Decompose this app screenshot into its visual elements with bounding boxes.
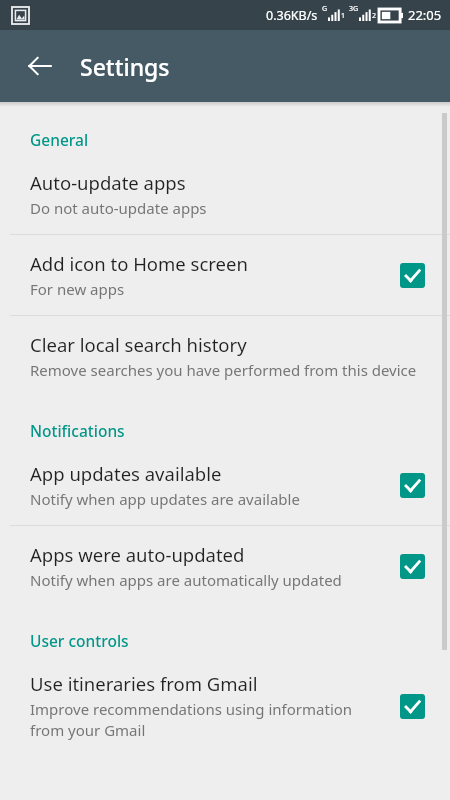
button[interactable]: Use itineraries from Gmail: [0, 655, 450, 757]
staticText: Use itineraries from Gmail: [30, 671, 258, 696]
button[interactable]: Clear local search history: [0, 316, 450, 396]
button[interactable]: Apps were auto-updated: [0, 526, 450, 606]
staticText: Notify when app updates are available: [30, 489, 300, 509]
staticText: Apps were auto-updated: [30, 542, 245, 567]
staticText: Do not auto-update apps: [30, 198, 207, 218]
staticText: Improve recommendations using informatio…: [30, 699, 380, 741]
staticText: General: [30, 129, 89, 150]
button[interactable]: Toggle: [392, 686, 432, 726]
staticText: 2: [372, 11, 377, 21]
button[interactable]: Toggle: [392, 546, 432, 586]
staticText: Add icon to Home screen: [30, 251, 248, 276]
staticText: Settings: [80, 51, 170, 82]
staticText: G: [322, 4, 328, 14]
staticText: Notifications: [30, 420, 125, 441]
staticText: For new apps: [30, 279, 125, 299]
button[interactable]: Auto-update apps: [0, 154, 450, 234]
staticText: Clear local search history: [30, 332, 247, 357]
staticText: 3G: [349, 4, 359, 14]
staticText: Notify when apps are automatically updat…: [30, 570, 342, 590]
staticText: 1: [341, 11, 346, 21]
button[interactable]: Add icon to Home screen: [0, 235, 450, 315]
staticText: User controls: [30, 630, 129, 651]
staticText: 0.36KB/s: [266, 7, 318, 24]
button[interactable]: Toggle: [392, 255, 432, 295]
staticText: App updates available: [30, 461, 222, 486]
staticText: Auto-update apps: [30, 170, 186, 195]
staticText: Remove searches you have performed from …: [30, 360, 417, 380]
staticText: 22:05: [408, 6, 442, 24]
button[interactable]: Back: [18, 44, 62, 88]
button[interactable]: App updates available: [0, 445, 450, 525]
button[interactable]: Toggle: [392, 465, 432, 505]
